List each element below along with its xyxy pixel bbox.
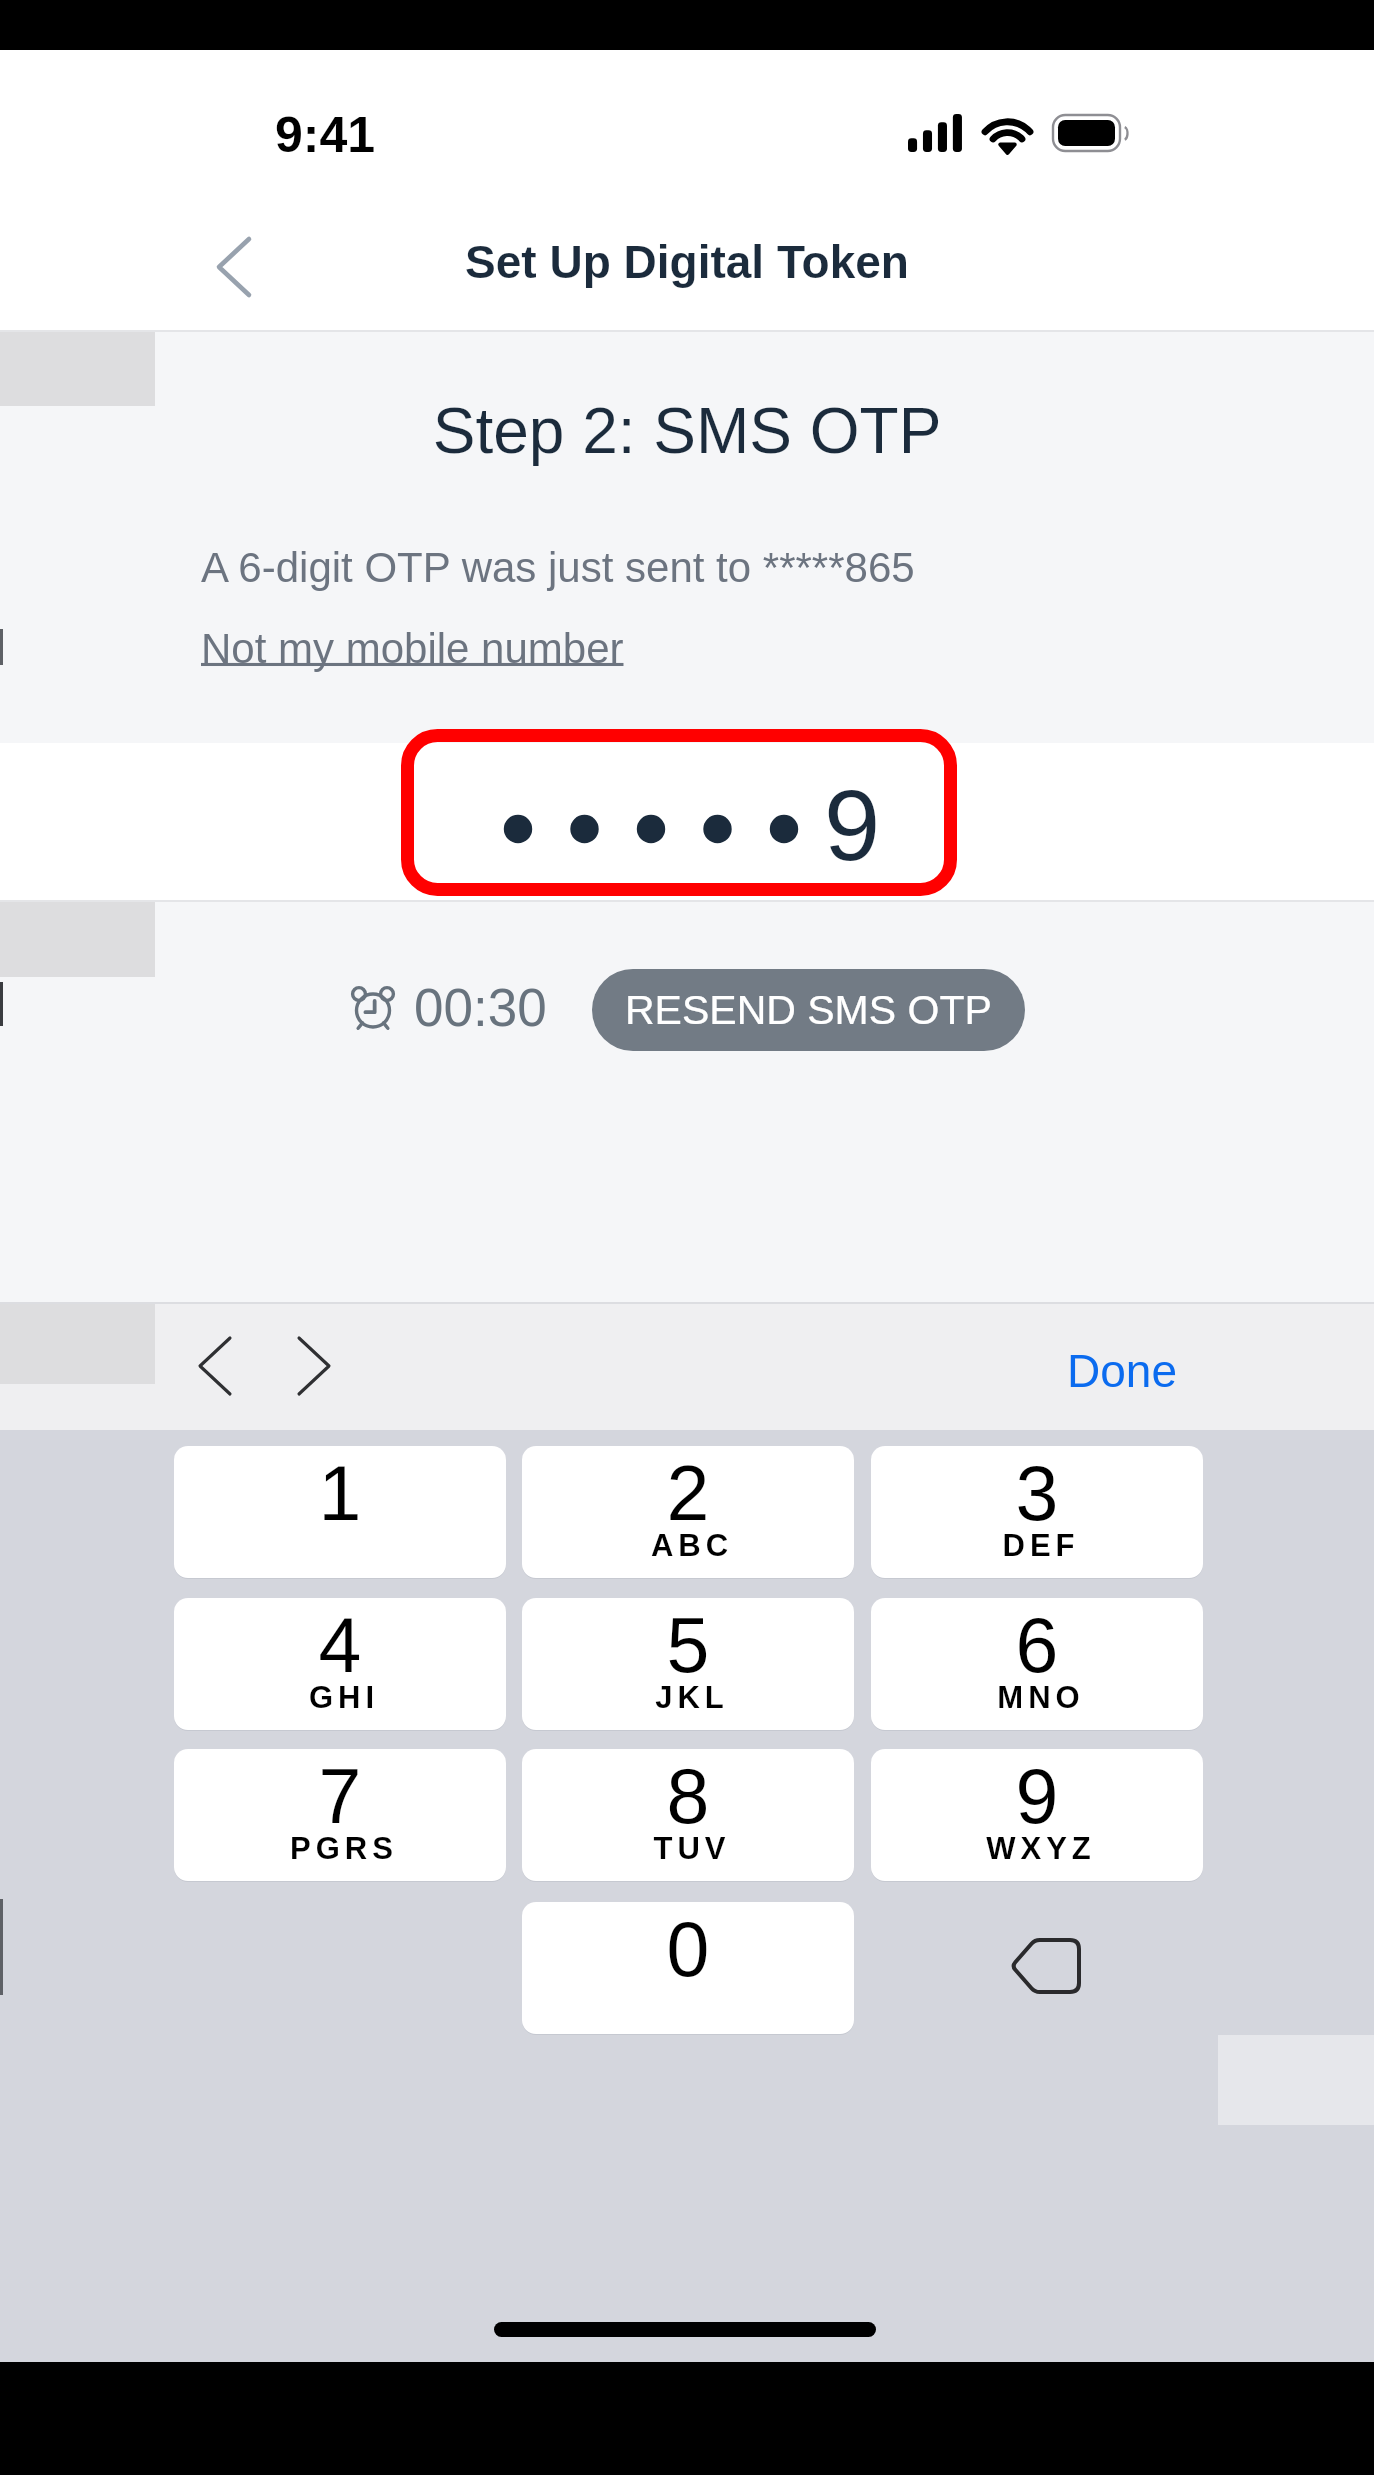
staticText: 00:30	[414, 978, 547, 1037]
staticText: JKL	[526, 1680, 854, 1715]
staticText: 9	[871, 1753, 1203, 1839]
staticText: A 6-digit OTP was just sent to *****865	[201, 544, 915, 591]
staticText: DEF	[875, 1528, 1203, 1563]
button[interactable]: 9	[871, 1749, 1203, 1881]
staticText: 5	[522, 1602, 854, 1688]
button[interactable]: 1	[174, 1446, 506, 1578]
staticText: 7	[174, 1753, 506, 1839]
staticText: TUV	[526, 1831, 854, 1866]
button[interactable]: 4	[174, 1598, 506, 1730]
button[interactable]: 2	[522, 1446, 854, 1578]
button[interactable]: 0	[522, 1902, 854, 2034]
button[interactable]: Next field	[272, 1324, 356, 1408]
button[interactable]: 5	[522, 1598, 854, 1730]
button[interactable]: 8	[522, 1749, 854, 1881]
staticText: PGRS	[178, 1831, 506, 1866]
button[interactable]: Not my mobile number	[201, 617, 641, 675]
staticText: ABC	[526, 1528, 854, 1563]
staticText: 9:41	[275, 107, 376, 163]
button[interactable]: RESEND SMS OTP	[592, 969, 1025, 1051]
staticText: 4	[174, 1602, 506, 1688]
button[interactable]: Back	[175, 215, 285, 319]
staticText: 6	[871, 1602, 1203, 1688]
button[interactable]: 6	[871, 1598, 1203, 1730]
staticText: WXYZ	[875, 1831, 1203, 1866]
staticText: 1	[174, 1450, 506, 1536]
staticText: Not my mobile number	[201, 625, 624, 672]
button[interactable]: 7	[174, 1749, 506, 1881]
button[interactable]: Backspace	[871, 1902, 1203, 2034]
staticText: RESEND SMS OTP	[625, 987, 992, 1033]
staticText: 3	[871, 1450, 1203, 1536]
staticText: 2	[522, 1450, 854, 1536]
staticText: 9	[824, 769, 881, 882]
staticText: Step 2: SMS OTP	[0, 395, 1374, 467]
button[interactable]: Done	[1050, 1326, 1194, 1414]
staticText: GHI	[178, 1680, 506, 1715]
button[interactable]: Previous field	[173, 1324, 257, 1408]
staticText: Set Up Digital Token	[0, 236, 1374, 287]
staticText: MNO	[875, 1680, 1203, 1715]
button[interactable]: 3	[871, 1446, 1203, 1578]
staticText: 0	[522, 1906, 854, 1992]
staticText: Done	[1067, 1345, 1177, 1396]
button[interactable]: 9	[0, 743, 1374, 900]
staticText: 8	[522, 1753, 854, 1839]
